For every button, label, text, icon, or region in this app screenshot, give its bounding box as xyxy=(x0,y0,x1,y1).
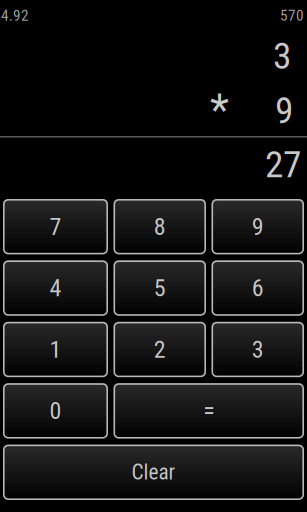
button[interactable]: 9 xyxy=(211,199,304,254)
staticText: 0 xyxy=(49,397,61,425)
staticText: 570 xyxy=(280,6,304,24)
button[interactable]: 8 xyxy=(113,199,206,254)
staticText: 4 xyxy=(49,274,61,302)
staticText: Clear xyxy=(131,460,175,485)
staticText: 8 xyxy=(154,213,166,241)
button[interactable]: 0 xyxy=(3,383,108,439)
staticText: 9 xyxy=(275,89,293,132)
staticText: 4.92 xyxy=(1,6,29,24)
staticText: 9 xyxy=(252,213,264,241)
button[interactable]: 7 xyxy=(3,199,108,254)
staticText: 3 xyxy=(252,335,264,363)
button[interactable]: 6 xyxy=(211,260,304,316)
staticText: 2 xyxy=(154,335,166,363)
staticText: 6 xyxy=(252,274,264,302)
button[interactable]: 3 xyxy=(211,322,304,377)
button[interactable]: 5 xyxy=(113,260,206,316)
staticText: * xyxy=(210,85,229,136)
staticText: 1 xyxy=(49,335,61,363)
staticText: 27 xyxy=(265,143,301,186)
staticText: = xyxy=(203,397,214,425)
staticText: 3 xyxy=(273,34,291,78)
button[interactable]: = xyxy=(113,383,304,439)
button[interactable]: 2 xyxy=(113,322,206,377)
button[interactable]: 1 xyxy=(3,322,108,377)
staticText: 5 xyxy=(154,274,166,302)
staticText: 7 xyxy=(49,213,61,241)
button[interactable]: 4 xyxy=(3,260,108,316)
button[interactable]: Clear xyxy=(3,445,304,500)
